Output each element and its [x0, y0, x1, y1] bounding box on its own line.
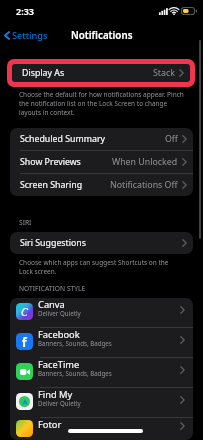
- button[interactable]: C: [10, 298, 193, 327]
- staticText: Deliver Quietly: [38, 429, 81, 430]
- staticText: Stack: [153, 67, 175, 79]
- button[interactable]: Screen Sharing: [10, 174, 193, 196]
- staticText: Choose the default for how notifications…: [19, 90, 189, 117]
- staticText: Deliver Quietly: [38, 309, 81, 317]
- staticText: Scheduled Summary: [20, 133, 105, 145]
- staticText: Siri Suggestions: [20, 237, 86, 249]
- button[interactable]: Fotor: [10, 418, 193, 440]
- staticText: Settings: [12, 29, 48, 42]
- staticText: Notifications: [71, 29, 133, 42]
- staticText: Choose which apps can suggest Shortcuts …: [19, 258, 169, 276]
- staticText: Fotor: [38, 418, 62, 431]
- staticText: Show Previews: [20, 156, 81, 168]
- button[interactable]: Scheduled Summary: [10, 128, 193, 150]
- button[interactable]: Show Previews: [10, 151, 193, 173]
- button[interactable]: FaceTime: [10, 358, 193, 387]
- button[interactable]: Settings: [0, 26, 54, 45]
- staticText: When Unlocked: [112, 156, 178, 168]
- button[interactable]: f: [10, 328, 193, 357]
- staticText: Canva: [38, 298, 65, 311]
- button[interactable]: Display As: [12, 64, 190, 82]
- staticText: Deliver Quietly: [38, 399, 81, 407]
- staticText: Off: [165, 133, 178, 145]
- staticText: Notifications Off: [110, 179, 178, 191]
- staticText: Find My: [38, 388, 73, 401]
- staticText: Banners, Sounds, Badges: [38, 369, 112, 377]
- staticText: f: [22, 334, 27, 350]
- staticText: Facebook: [38, 328, 80, 341]
- staticText: 2:33: [16, 5, 34, 17]
- staticText: NOTIFICATION STYLE: [19, 284, 86, 293]
- staticText: Screen Sharing: [20, 179, 83, 191]
- staticText: Display As: [22, 67, 65, 79]
- button[interactable]: Find My: [10, 388, 193, 417]
- staticText: Banners, Sounds, Badges: [38, 339, 112, 347]
- staticText: SIRI: [19, 218, 32, 227]
- staticText: FaceTime: [38, 358, 80, 371]
- staticText: C: [21, 304, 28, 319]
- button[interactable]: Siri Suggestions: [10, 232, 193, 254]
